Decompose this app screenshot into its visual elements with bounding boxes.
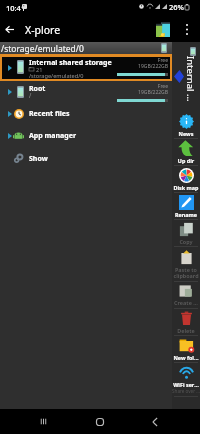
button[interactable]: WiFi server <box>172 363 200 396</box>
staticText: Copy <box>173 238 199 245</box>
button[interactable] <box>0 81 172 103</box>
staticText: Up dir <box>173 157 199 164</box>
staticText: New folder <box>173 354 199 361</box>
button[interactable]: Create ZIP <box>172 282 200 308</box>
staticText: Create ZIP <box>173 299 199 306</box>
staticText: /storage/emulated/0 <box>29 72 84 80</box>
button[interactable] <box>2 57 170 79</box>
button[interactable]: Delete <box>172 309 200 335</box>
staticText: Recent files <box>29 109 70 119</box>
button[interactable] <box>0 147 172 169</box>
staticText: Internal sh... <box>187 56 197 104</box>
staticText: 26% <box>169 2 184 12</box>
staticText: Free <box>116 83 168 90</box>
staticText: X-plore <box>25 23 61 37</box>
staticText: Internal shared storage <box>29 58 112 68</box>
button[interactable]: Recent apps <box>29 409 57 434</box>
staticText: 10:41 <box>6 3 26 13</box>
staticText: Share over network <box>172 388 200 394</box>
staticText: News <box>173 130 199 137</box>
staticText: Rename <box>173 211 199 218</box>
staticText: 21 <box>36 66 43 74</box>
staticText: App manager <box>29 131 77 141</box>
button[interactable] <box>0 125 172 147</box>
staticText: Free <box>116 57 168 64</box>
staticText: Paste to clipboard <box>173 266 199 279</box>
button[interactable]: Disk map <box>172 166 200 192</box>
button[interactable]: Copy <box>172 220 200 246</box>
button[interactable]: Paste to clipboard <box>172 247 200 281</box>
button[interactable]: New folder <box>172 336 200 362</box>
button[interactable]: Back <box>141 409 169 434</box>
staticText: / <box>29 91 32 99</box>
button[interactable]: Up dir <box>172 139 200 165</box>
staticText: Root <box>29 84 46 94</box>
staticText: Disk map <box>173 184 199 191</box>
staticText: 19GB/222GB <box>116 89 168 96</box>
button[interactable] <box>0 103 172 125</box>
button[interactable]: Navigate up <box>0 16 22 42</box>
button[interactable]: News <box>172 112 200 138</box>
staticText: /storage/emulated/0 <box>1 43 84 55</box>
button[interactable]: Switch pane <box>156 22 170 37</box>
button[interactable]: /storage/emulated/0 <box>0 42 172 54</box>
button[interactable]: More options <box>179 21 195 37</box>
staticText: 19GB/222GB <box>116 63 168 70</box>
button[interactable]: Rename <box>172 193 200 219</box>
button[interactable]: Home <box>86 409 114 434</box>
staticText: Delete <box>173 327 199 334</box>
staticText: Show <box>29 154 48 164</box>
staticText: WiFi server <box>173 381 199 388</box>
